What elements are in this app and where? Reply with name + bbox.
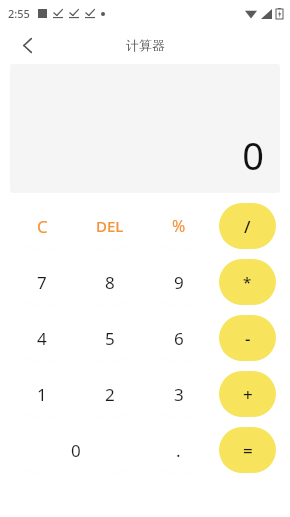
staticText: / bbox=[244, 215, 251, 238]
staticText: 2:55 bbox=[8, 6, 30, 21]
staticText: 4 bbox=[37, 327, 47, 350]
button[interactable]: . bbox=[150, 427, 207, 473]
button[interactable]: 5 bbox=[82, 315, 138, 361]
staticText: % bbox=[172, 215, 186, 237]
staticText: - bbox=[245, 327, 251, 350]
button[interactable]: 7 bbox=[14, 259, 70, 305]
staticText: * bbox=[243, 272, 252, 292]
button[interactable]: 8 bbox=[82, 259, 138, 305]
button[interactable]: 2 bbox=[82, 371, 138, 417]
button[interactable]: Back bbox=[10, 28, 44, 62]
button[interactable]: * bbox=[219, 259, 276, 305]
staticText: 8 bbox=[105, 271, 115, 294]
button[interactable]: 3 bbox=[150, 371, 207, 417]
staticText: DEL bbox=[96, 216, 124, 236]
button[interactable]: + bbox=[219, 371, 276, 417]
staticText: C bbox=[37, 215, 48, 238]
button[interactable]: 6 bbox=[150, 315, 207, 361]
button[interactable]: 4 bbox=[14, 315, 70, 361]
staticText: 6 bbox=[174, 327, 184, 350]
staticText: 3 bbox=[174, 383, 184, 406]
button[interactable]: 0 bbox=[14, 427, 138, 473]
staticText: 0 bbox=[242, 129, 264, 181]
staticText: 5 bbox=[105, 327, 115, 350]
button[interactable]: 1 bbox=[14, 371, 70, 417]
button[interactable]: C bbox=[14, 203, 70, 249]
staticText: 2 bbox=[105, 383, 115, 406]
button[interactable]: DEL bbox=[82, 203, 138, 249]
button[interactable]: 9 bbox=[150, 259, 207, 305]
staticText: 0 bbox=[71, 439, 81, 462]
staticText: 1 bbox=[37, 383, 47, 406]
staticText: + bbox=[243, 383, 253, 406]
staticText: 9 bbox=[174, 271, 184, 294]
staticText: 7 bbox=[37, 271, 47, 294]
staticText: . bbox=[176, 439, 181, 462]
button[interactable]: = bbox=[219, 427, 276, 473]
button[interactable]: % bbox=[150, 203, 207, 249]
button[interactable]: / bbox=[219, 203, 276, 249]
staticText: 计算器 bbox=[126, 37, 165, 53]
button[interactable]: - bbox=[219, 315, 276, 361]
staticText: = bbox=[243, 439, 253, 462]
